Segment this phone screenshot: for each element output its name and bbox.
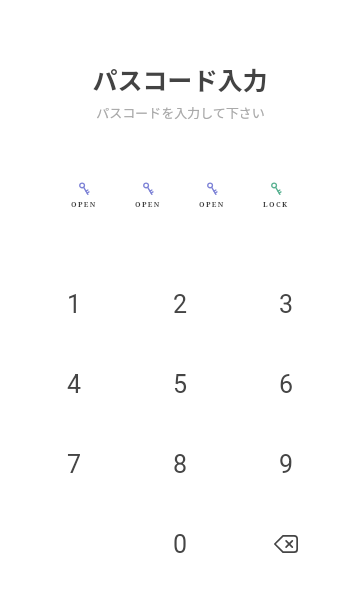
staticText: 3 <box>279 290 294 319</box>
staticText: 6 <box>279 370 294 399</box>
button[interactable]: OPEN <box>116 182 180 210</box>
staticText: 7 <box>67 450 82 479</box>
staticText: 0 <box>173 530 188 559</box>
button[interactable]: 9 <box>233 424 339 504</box>
button[interactable]: 6 <box>233 344 339 424</box>
staticText: 8 <box>173 450 188 479</box>
button[interactable]: LOCK <box>244 182 308 210</box>
staticText: パスコード入力 <box>92 61 268 97</box>
button[interactable]: 2 <box>127 264 233 344</box>
button[interactable]: 1 <box>21 264 127 344</box>
button[interactable]: 8 <box>127 424 233 504</box>
staticText: 2 <box>173 290 188 319</box>
button[interactable]: OPEN <box>180 182 244 210</box>
staticText: 4 <box>67 370 82 399</box>
staticText: パスコードを入力して下さい <box>96 103 265 122</box>
button[interactable]: 4 <box>21 344 127 424</box>
staticText: 1 <box>67 290 82 319</box>
button[interactable]: 7 <box>21 424 127 504</box>
staticText: LOCK <box>263 200 289 210</box>
button[interactable]: 0 <box>127 504 233 584</box>
staticText: 9 <box>279 450 294 479</box>
button[interactable]: Backspace <box>233 504 339 584</box>
button[interactable]: 5 <box>127 344 233 424</box>
staticText: OPEN <box>135 200 161 210</box>
button[interactable]: 3 <box>233 264 339 344</box>
staticText: 5 <box>173 370 188 399</box>
button[interactable]: OPEN <box>52 182 116 210</box>
staticText: OPEN <box>199 200 225 210</box>
staticText: OPEN <box>71 200 97 210</box>
